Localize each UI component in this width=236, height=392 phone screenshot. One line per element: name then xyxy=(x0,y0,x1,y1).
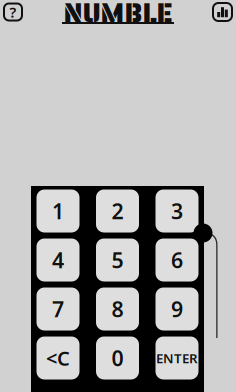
button[interactable]: 3 xyxy=(155,189,198,232)
staticText: 0 xyxy=(111,344,123,372)
button[interactable]: 9 xyxy=(155,287,198,330)
staticText: NUMBLE xyxy=(63,0,172,34)
button[interactable]: 5 xyxy=(96,238,139,281)
button[interactable]: ENTER xyxy=(155,336,198,379)
button[interactable]: 1 xyxy=(36,189,79,232)
staticText: 9 xyxy=(171,295,183,323)
button[interactable]: Statistics xyxy=(213,3,232,21)
button[interactable]: 4 xyxy=(36,238,79,281)
button[interactable]: 8 xyxy=(96,287,139,330)
staticText: 3 xyxy=(171,197,183,225)
staticText: 4 xyxy=(52,246,64,274)
staticText: ENTER xyxy=(156,349,198,367)
staticText: 2 xyxy=(111,197,123,225)
staticText: 5 xyxy=(111,246,123,274)
button[interactable]: 0 xyxy=(96,336,139,379)
staticText: 6 xyxy=(171,246,183,274)
staticText: 1 xyxy=(52,197,64,225)
button[interactable]: Help xyxy=(4,3,22,20)
staticText: 7 xyxy=(52,295,64,323)
button[interactable]: <C xyxy=(36,336,79,379)
staticText: ? xyxy=(9,2,16,22)
staticText: 8 xyxy=(111,295,123,323)
staticText: <C xyxy=(46,345,70,371)
button[interactable]: 6 xyxy=(155,238,198,281)
button[interactable]: 2 xyxy=(96,189,139,232)
button[interactable]: 7 xyxy=(36,287,79,330)
